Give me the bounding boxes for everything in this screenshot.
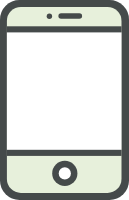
button[interactable]: Smartphone xyxy=(0,0,129,200)
